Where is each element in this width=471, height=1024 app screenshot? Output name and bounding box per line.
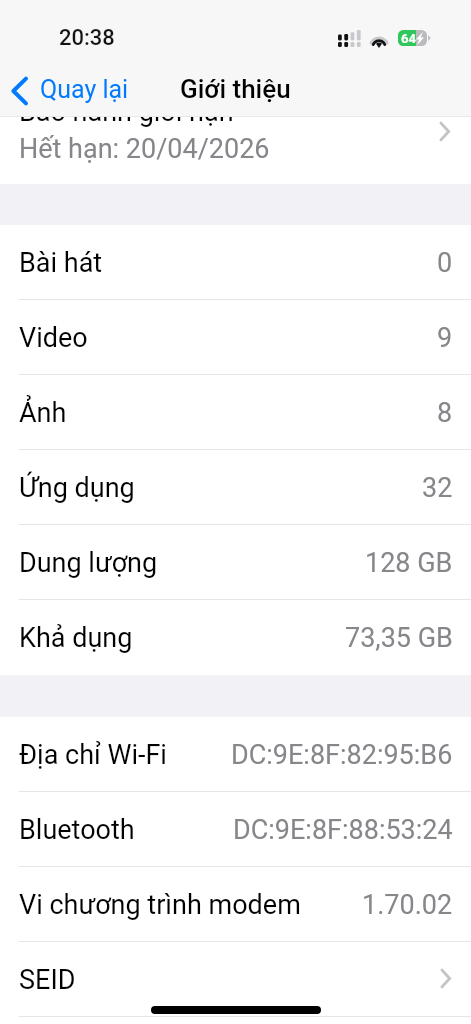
staticText: Ứng dụng [19,472,135,504]
staticText: 64 [401,31,416,46]
button[interactable]: Địa chỉ Wi-Fi [0,717,471,792]
staticText: Quay lại [40,75,129,104]
button[interactable]: Vi chương trình modem [0,867,471,942]
staticText: 8 [437,397,453,429]
button[interactable]: Dung lượng [0,525,471,600]
staticText: DC:9E:8F:82:95:B6 [231,739,453,771]
staticText: 20:38 [59,25,115,51]
staticText: Ảnh [19,397,67,429]
staticText: DC:9E:8F:88:53:24 [233,814,453,846]
staticText: Giới thiệu [180,74,291,104]
staticText: 32 [422,472,453,504]
button[interactable]: Video [0,300,471,375]
button[interactable]: Bài hát [0,225,471,300]
button[interactable]: Ứng dụng [0,450,471,525]
other: Xem thêm [440,969,451,988]
button[interactable]: SEID [0,942,471,1017]
button[interactable]: Ảnh [0,375,471,450]
staticText: 0 [437,247,453,279]
staticText: 1.70.02 [362,889,453,921]
staticText: Video [19,322,88,354]
button[interactable]: Bluetooth [0,792,471,867]
staticText: 9 [437,322,453,354]
staticText: Hết hạn: 20/04/2026 [19,133,270,165]
staticText: SEID [19,964,76,996]
staticText: Địa chỉ Wi-Fi [19,739,167,771]
other: Xem thêm [439,122,450,141]
other: Quay lại [11,77,28,105]
staticText: Bài hát [19,247,103,279]
staticText: 128 GB [365,547,453,579]
button[interactable]: Quay lại [0,75,139,104]
staticText: Bảo hành giới hạn [19,96,234,128]
staticText: 73,35 GB [345,622,453,654]
staticText: Bluetooth [19,814,135,846]
staticText: Dung lượng [19,547,158,579]
staticText: Vi chương trình modem [19,889,301,921]
button[interactable]: Bảo hành giới hạn [0,63,471,184]
staticText: Khả dụng [19,622,133,654]
button[interactable]: Khả dụng [0,600,471,675]
